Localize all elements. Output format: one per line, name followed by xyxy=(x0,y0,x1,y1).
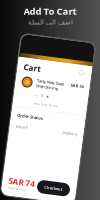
staticText: Add To Cart xyxy=(23,5,76,17)
staticText: Total (VAT incl.) xyxy=(17,190,37,194)
staticText: Van #9 xyxy=(17,128,29,133)
staticText: Tasty Nuts Soup With Shrimp xyxy=(32,80,59,90)
staticText: Cart xyxy=(17,65,34,76)
staticText: SAR 74 xyxy=(17,180,44,190)
staticText: Order Status xyxy=(17,116,43,122)
staticText: SAR 74 xyxy=(66,80,79,85)
button[interactable]: Checkout xyxy=(46,180,79,194)
staticText: اضف الى السلة xyxy=(27,18,72,26)
staticText: Extra: Nuts, Shrimp xyxy=(32,103,56,107)
staticText: Delivery xyxy=(64,128,79,133)
staticText: Checkout xyxy=(53,184,72,190)
